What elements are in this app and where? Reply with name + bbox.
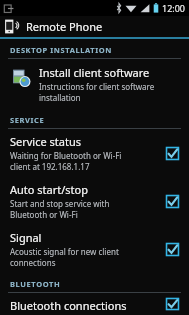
staticText: Waiting for Bluetooth or Wi-Fi bbox=[10, 150, 122, 161]
staticText: Service status bbox=[10, 134, 82, 149]
staticText: Auto start/stop bbox=[10, 182, 88, 197]
button[interactable]: Bluetooth connections bbox=[0, 293, 189, 315]
button[interactable]: Auto start/stop bbox=[0, 177, 189, 225]
staticText: BLUETOOTH bbox=[10, 279, 61, 289]
staticText: Signal bbox=[10, 230, 42, 245]
button[interactable]: Toggle bbox=[163, 144, 181, 162]
button[interactable]: Install client software bbox=[0, 59, 189, 109]
staticText: 12:00 bbox=[162, 2, 186, 14]
button[interactable]: Toggle bbox=[163, 298, 181, 310]
staticText: Instructions for client software bbox=[39, 81, 155, 92]
button[interactable]: Signal bbox=[0, 225, 189, 273]
staticText: connections bbox=[10, 257, 56, 268]
staticText: Remote Phone bbox=[26, 19, 103, 34]
staticText: client at 192.168.1.17 bbox=[10, 161, 90, 172]
staticText: Bluetooth connections bbox=[10, 298, 127, 310]
other: App icon bbox=[4, 19, 22, 34]
staticText: Bluetooth or Wi-Fi bbox=[10, 209, 78, 220]
staticText: installation bbox=[39, 92, 81, 103]
staticText: DESKTOP INSTALLATION bbox=[10, 45, 112, 55]
staticText: Install client software bbox=[39, 65, 150, 80]
staticText: SERVICE bbox=[10, 115, 45, 125]
button[interactable]: Toggle bbox=[163, 240, 181, 258]
button[interactable]: Service status bbox=[0, 129, 189, 177]
staticText: Start and stop service with bbox=[10, 198, 110, 209]
button[interactable]: Toggle bbox=[163, 192, 181, 210]
staticText: Acoustic signal for new client bbox=[10, 246, 119, 257]
